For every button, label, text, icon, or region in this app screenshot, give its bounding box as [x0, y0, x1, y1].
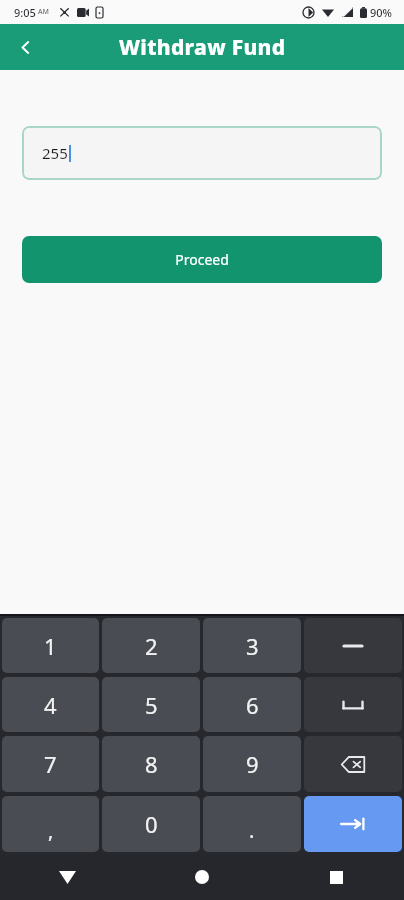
staticText: ,: [48, 817, 54, 844]
staticText: 9: [246, 749, 259, 779]
button[interactable]: Minus: [304, 618, 402, 673]
button[interactable]: Next: [304, 796, 402, 852]
staticText: 6: [246, 690, 259, 720]
button[interactable]: Proceed: [22, 236, 382, 283]
staticText: 90%: [370, 5, 392, 20]
button[interactable]: 1: [2, 618, 99, 673]
button[interactable]: ,: [2, 796, 99, 852]
button[interactable]: 3: [203, 618, 301, 673]
button[interactable]: 0: [102, 796, 200, 852]
staticText: .: [249, 817, 255, 844]
staticText: 7: [44, 749, 57, 779]
button[interactable]: Home: [134, 854, 269, 900]
staticText: 9:05: [14, 5, 36, 20]
button[interactable]: Recent apps: [269, 854, 404, 900]
staticText: 2: [145, 631, 158, 661]
button[interactable]: 6: [203, 677, 301, 732]
button[interactable]: Back: [0, 854, 134, 900]
button[interactable]: .: [203, 796, 301, 852]
button[interactable]: 9: [203, 736, 301, 792]
staticText: 1: [44, 631, 57, 661]
button[interactable]: Backspace: [304, 736, 402, 792]
staticText: 4: [44, 690, 57, 720]
staticText: 0: [145, 809, 158, 839]
staticText: 255: [42, 143, 68, 163]
button[interactable]: Back: [6, 28, 44, 66]
button[interactable]: 5: [102, 677, 200, 732]
staticText: AM: [38, 7, 50, 17]
button[interactable]: Space: [304, 677, 402, 732]
staticText: 3: [246, 631, 259, 661]
button[interactable]: 255: [22, 126, 382, 180]
staticText: Proceed: [175, 250, 229, 269]
button[interactable]: 2: [102, 618, 200, 673]
button[interactable]: 4: [2, 677, 99, 732]
staticText: 8: [145, 749, 158, 779]
button[interactable]: 8: [102, 736, 200, 792]
button[interactable]: 7: [2, 736, 99, 792]
staticText: 5: [145, 690, 158, 720]
staticText: Withdraw Fund: [119, 33, 286, 62]
